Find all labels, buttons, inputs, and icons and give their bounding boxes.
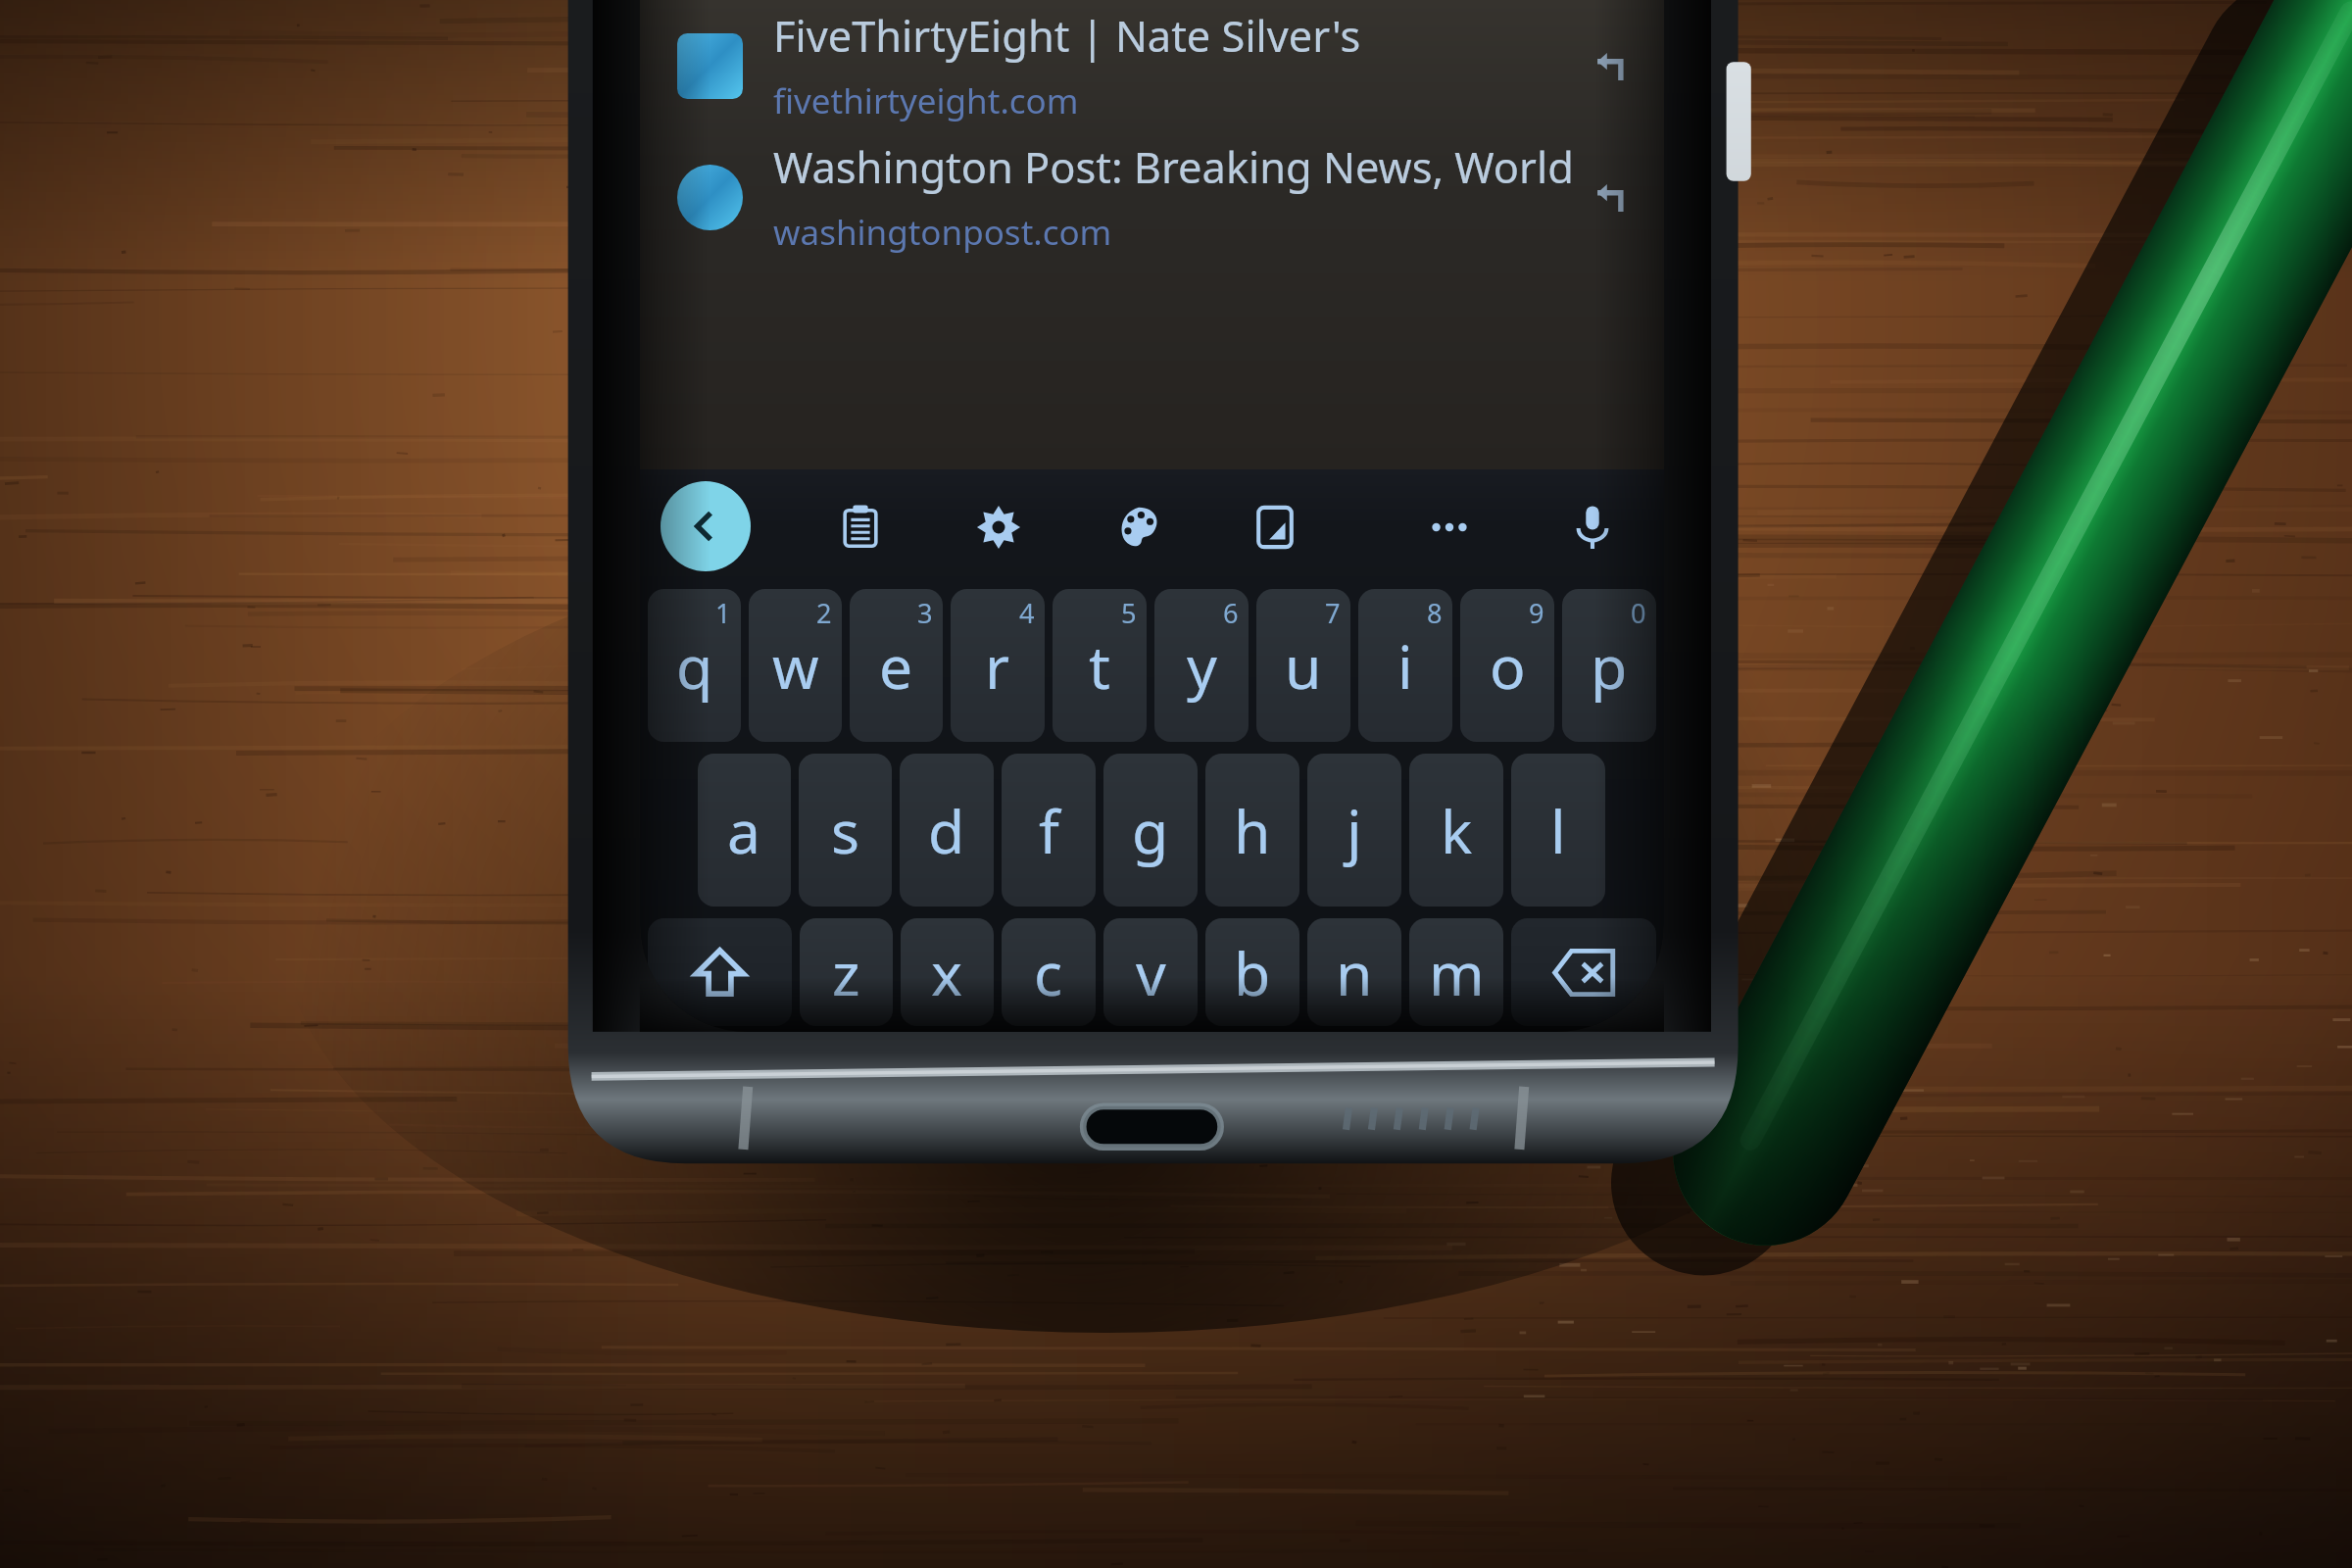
button[interactable]: u <box>1256 589 1350 742</box>
staticText: n <box>1336 932 1373 1013</box>
button[interactable]: Stickers <box>1236 488 1313 565</box>
button[interactable]: m <box>1409 918 1503 1026</box>
staticText: r <box>985 625 1010 707</box>
staticText: z <box>832 932 860 1013</box>
button[interactable]: h <box>1205 754 1299 906</box>
staticText: v <box>1136 932 1166 1013</box>
staticText: y <box>1187 625 1217 707</box>
staticText: m <box>1429 932 1485 1013</box>
staticText: j <box>1347 790 1362 871</box>
staticText: x <box>931 932 963 1013</box>
button[interactable]: n <box>1307 918 1401 1026</box>
button[interactable]: t <box>1053 589 1147 742</box>
button[interactable]: Settings <box>959 488 1037 565</box>
staticText: a <box>727 790 761 871</box>
staticText: q <box>676 625 713 707</box>
staticText: f <box>1039 790 1059 871</box>
button[interactable]: Use this suggestion <box>1583 39 1636 92</box>
staticText: 2 <box>816 595 832 631</box>
staticText: t <box>1089 625 1110 707</box>
button[interactable]: d <box>900 754 994 906</box>
button[interactable]: Themes <box>1100 488 1177 565</box>
staticText: c <box>1034 932 1063 1013</box>
staticText: d <box>928 790 965 871</box>
staticText: 1 <box>715 595 731 631</box>
staticText: o <box>1490 625 1526 707</box>
staticText: washingtonpost.com <box>773 209 1112 256</box>
button[interactable]: f <box>1002 754 1096 906</box>
staticText: w <box>772 625 819 707</box>
button[interactable]: Clipboard <box>821 488 899 565</box>
staticText: 4 <box>1019 595 1035 631</box>
staticText: s <box>831 790 860 871</box>
staticText: h <box>1234 790 1271 871</box>
button[interactable]: Use this suggestion <box>1583 171 1636 223</box>
staticText: 5 <box>1121 595 1137 631</box>
staticText: FiveThirtyEight | Nate Silver's FiveThir… <box>773 7 1583 65</box>
button[interactable]: j <box>1307 754 1401 906</box>
button[interactable]: q <box>648 589 741 742</box>
button[interactable]: x <box>901 918 994 1026</box>
staticText: 6 <box>1223 595 1239 631</box>
button[interactable]: i <box>1358 589 1452 742</box>
button[interactable]: Shift <box>648 918 792 1026</box>
button[interactable]: g <box>1103 754 1198 906</box>
staticText: b <box>1234 932 1271 1013</box>
button[interactable]: Voice input <box>1553 488 1631 565</box>
button[interactable]: b <box>1205 918 1299 1026</box>
button[interactable]: FiveThirtyEight | Nate Silver's FiveThir… <box>640 0 1664 131</box>
button[interactable]: w <box>749 589 842 742</box>
button[interactable]: s <box>799 754 892 906</box>
button[interactable]: k <box>1409 754 1503 906</box>
staticText: Washington Post: Breaking News, World <box>773 138 1574 196</box>
button[interactable]: l <box>1511 754 1605 906</box>
button[interactable]: More options <box>1410 488 1488 565</box>
button[interactable]: v <box>1103 918 1198 1026</box>
button[interactable]: p <box>1562 589 1656 742</box>
button[interactable]: o <box>1460 589 1554 742</box>
staticText: u <box>1285 625 1322 707</box>
button[interactable]: Washington Post: Breaking News, World <box>640 131 1664 263</box>
staticText: k <box>1441 790 1473 871</box>
button[interactable]: z <box>800 918 893 1026</box>
button[interactable]: e <box>850 589 943 742</box>
staticText: e <box>879 625 913 707</box>
staticText: g <box>1132 790 1169 871</box>
button[interactable]: r <box>951 589 1045 742</box>
button[interactable]: a <box>698 754 791 906</box>
staticText: i <box>1397 625 1413 707</box>
button[interactable]: Backspace <box>1511 918 1656 1026</box>
button[interactable]: Back <box>661 481 751 571</box>
staticText: l <box>1550 790 1566 871</box>
staticText: 0 <box>1631 595 1646 631</box>
staticText: 9 <box>1529 595 1544 631</box>
button[interactable]: c <box>1002 918 1096 1026</box>
staticText: 8 <box>1427 595 1443 631</box>
staticText: fivethirtyeight.com <box>773 77 1079 124</box>
staticText: 3 <box>917 595 933 631</box>
staticText: 7 <box>1325 595 1341 631</box>
button[interactable]: y <box>1154 589 1249 742</box>
staticText: p <box>1591 625 1628 707</box>
